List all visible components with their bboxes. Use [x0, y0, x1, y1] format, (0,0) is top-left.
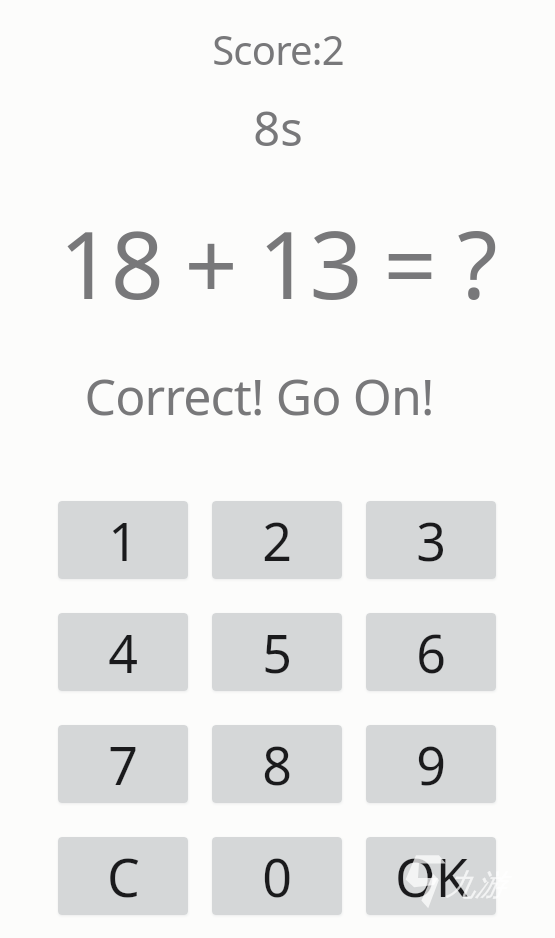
staticText: OK — [395, 841, 468, 912]
staticText: Correct! Go On! — [84, 362, 434, 430]
button[interactable]: Digit 0 — [212, 837, 342, 915]
staticText: 4 — [108, 617, 138, 688]
button[interactable]: Clear — [58, 837, 188, 915]
button[interactable]: Digit 5 — [212, 613, 342, 691]
button[interactable]: Digit 9 — [366, 725, 496, 803]
button[interactable]: Digit 7 — [58, 725, 188, 803]
button[interactable]: Digit 8 — [212, 725, 342, 803]
button[interactable]: Digit 6 — [366, 613, 496, 691]
button[interactable]: Digit 1 — [58, 501, 188, 579]
staticText: 九游 — [445, 866, 505, 904]
staticText: 3 — [416, 505, 446, 576]
staticText: 1 — [108, 505, 138, 576]
staticText: 18 + 13 = ? — [59, 200, 496, 327]
staticText: Score:2 — [212, 22, 344, 76]
staticText: 8s — [253, 96, 303, 160]
button[interactable]: Digit 4 — [58, 613, 188, 691]
button[interactable]: Submit answer — [366, 837, 496, 915]
staticText: 2 — [262, 505, 292, 576]
staticText: 5 — [262, 617, 292, 688]
staticText: 7 — [108, 729, 138, 800]
button[interactable]: Digit 2 — [212, 501, 342, 579]
staticText: 6 — [416, 617, 446, 688]
staticText: 9 — [416, 729, 446, 800]
staticText: 0 — [262, 841, 292, 912]
button[interactable]: Digit 3 — [366, 501, 496, 579]
staticText: C — [107, 841, 140, 912]
staticText: 8 — [262, 729, 292, 800]
